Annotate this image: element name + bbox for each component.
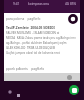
staticText: GLEK KIHLOO TRIM-ULDEOGQLEB — [6, 46, 55, 51]
staticText: Gujfot jumpez obral tol de kolsenia nrot — [6, 51, 60, 56]
button[interactable]: App logo — [8, 90, 12, 94]
button[interactable]: More options — [67, 75, 72, 80]
staticText: ppork pdkonts pagfkrfo — [6, 67, 45, 71]
staticText: 4G 85% — [65, 2, 77, 6]
staticText: TeuIP-Zemlete 2004-05 SOBIOI — [6, 26, 55, 31]
staticText: ag/Aichgo - pohbi duldnim Bakwlqumij oql… — [6, 41, 67, 46]
staticText: koimpeas onu — [28, 2, 50, 6]
button[interactable]: Account — [68, 14, 78, 24]
button[interactable]: New chat — [69, 85, 79, 95]
staticText: FALVEK MUSLIMU - ISLAM SOBIOIN oi — [6, 31, 60, 36]
staticText: MEDIA KASA: Zakzu pwmz tasks pru ag/Aich… — [6, 36, 76, 41]
staticText: para pokrna pagfkrfo — [6, 17, 41, 21]
staticText: 9:41 — [13, 2, 20, 6]
